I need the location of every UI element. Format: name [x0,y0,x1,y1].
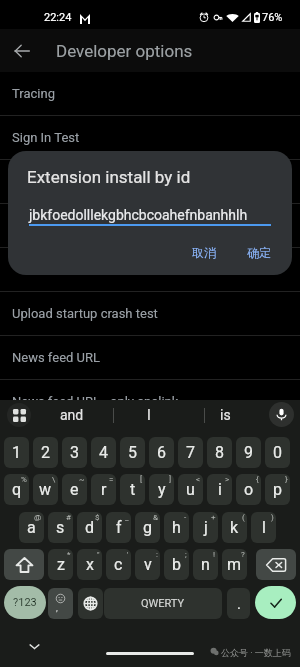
button[interactable]: Keyboard toolbar [7,403,31,427]
button[interactable]: k [222,512,247,543]
button[interactable]: 1 [4,437,29,468]
button[interactable]: QWERTY [104,588,222,619]
staticText: 3 [70,443,79,462]
button[interactable]: m [222,549,247,580]
staticText: e [70,480,79,499]
button[interactable]: j [193,512,218,543]
staticText: l [262,518,266,537]
button[interactable]: 6 [149,437,174,468]
staticText: } [285,475,288,484]
staticText: ~ [79,475,85,484]
button[interactable]: Backspace [256,549,296,580]
button[interactable]: z [48,549,73,580]
button[interactable]: r [91,474,116,505]
button[interactable]: Change keyboard language [78,588,103,619]
staticText: ? [241,550,245,559]
button[interactable]: ?123 [4,586,46,619]
button[interactable]: Hide keyboard [20,632,48,660]
button[interactable]: and [33,400,110,430]
staticText: + [211,513,216,522]
button[interactable]: 7 [178,437,203,468]
button[interactable]: is [187,400,264,430]
button[interactable]: y [149,474,174,505]
button[interactable]: . [227,588,250,619]
staticText: : [156,550,158,559]
button[interactable]: x [77,549,102,580]
button[interactable]: Upload startup crash test [0,292,300,336]
button[interactable]: o [236,474,261,505]
staticText: w [39,480,52,499]
button[interactable]: 确定 [237,239,281,266]
staticText: 1 [12,443,21,462]
button[interactable]: h [164,512,189,543]
button[interactable]: 0 [265,437,290,468]
button[interactable]: c [106,549,131,580]
button[interactable]: 2 [33,437,58,468]
button[interactable]: 8 [207,437,232,468]
staticText: p [273,480,282,499]
button[interactable]: v [135,549,160,580]
staticText: 公众号 · 一数上码 [221,647,291,658]
staticText: n [201,555,210,574]
button[interactable]: 9 [236,437,261,468]
staticText: s [56,518,65,537]
button[interactable]: Back [0,29,43,72]
button[interactable]: 4 [91,437,116,468]
button[interactable]: u [178,474,203,505]
button[interactable]: d [77,512,102,543]
button[interactable]: 5 [120,437,145,468]
staticText: * [67,550,71,559]
button[interactable]: News feed URL - only spalink [0,380,300,424]
staticText: Sign In Test [12,130,80,145]
button[interactable]: f [106,512,131,543]
button[interactable]: g [135,512,160,543]
button[interactable]: Shift [4,549,44,580]
button[interactable]: b [164,549,189,580]
button[interactable]: Emoji [48,588,73,619]
staticText: Upload startup crash test [12,306,158,321]
staticText: k [230,518,239,537]
staticText: _ [125,513,129,522]
button[interactable]: l [251,512,276,543]
staticText: > [225,475,230,484]
button[interactable]: e [62,474,87,505]
button[interactable]: Enter [255,586,296,619]
staticText: . [237,595,241,613]
button[interactable]: 3 [62,437,87,468]
staticText: = [109,475,114,484]
button[interactable]: Sign In Test [0,116,300,160]
staticText: 9 [244,443,253,462]
button[interactable]: 取消 [182,239,226,266]
button[interactable] [0,160,300,204]
button[interactable]: I [110,400,187,430]
staticText: 2 [41,443,50,462]
staticText: ! [213,550,216,559]
button[interactable]: q [4,474,29,505]
button[interactable]: p [265,474,290,505]
staticText: f [116,518,122,537]
staticText: a [27,518,36,537]
staticText: 确定 [247,245,271,260]
button[interactable] [0,248,300,292]
staticText: 22:24 [44,11,72,24]
button[interactable]: n [193,549,218,580]
staticText: ] [169,475,172,484]
button[interactable] [0,204,300,248]
staticText: ; [185,550,187,559]
staticText: d [85,518,95,537]
staticText: - [184,513,187,522]
staticText: " [97,550,100,559]
button[interactable]: t [120,474,145,505]
button[interactable]: News feed URL [0,336,300,380]
button[interactable]: w [33,474,58,505]
button[interactable]: Voice input [269,402,294,427]
staticText: Tracing [12,86,55,101]
staticText: \ [52,475,56,484]
button[interactable]: Tracing [0,72,300,116]
staticText: j [204,518,208,537]
button[interactable]: a [19,512,44,543]
button[interactable]: i [207,474,232,505]
button[interactable]: s [48,512,73,543]
staticText: and [60,407,84,423]
staticText: r [101,480,107,499]
